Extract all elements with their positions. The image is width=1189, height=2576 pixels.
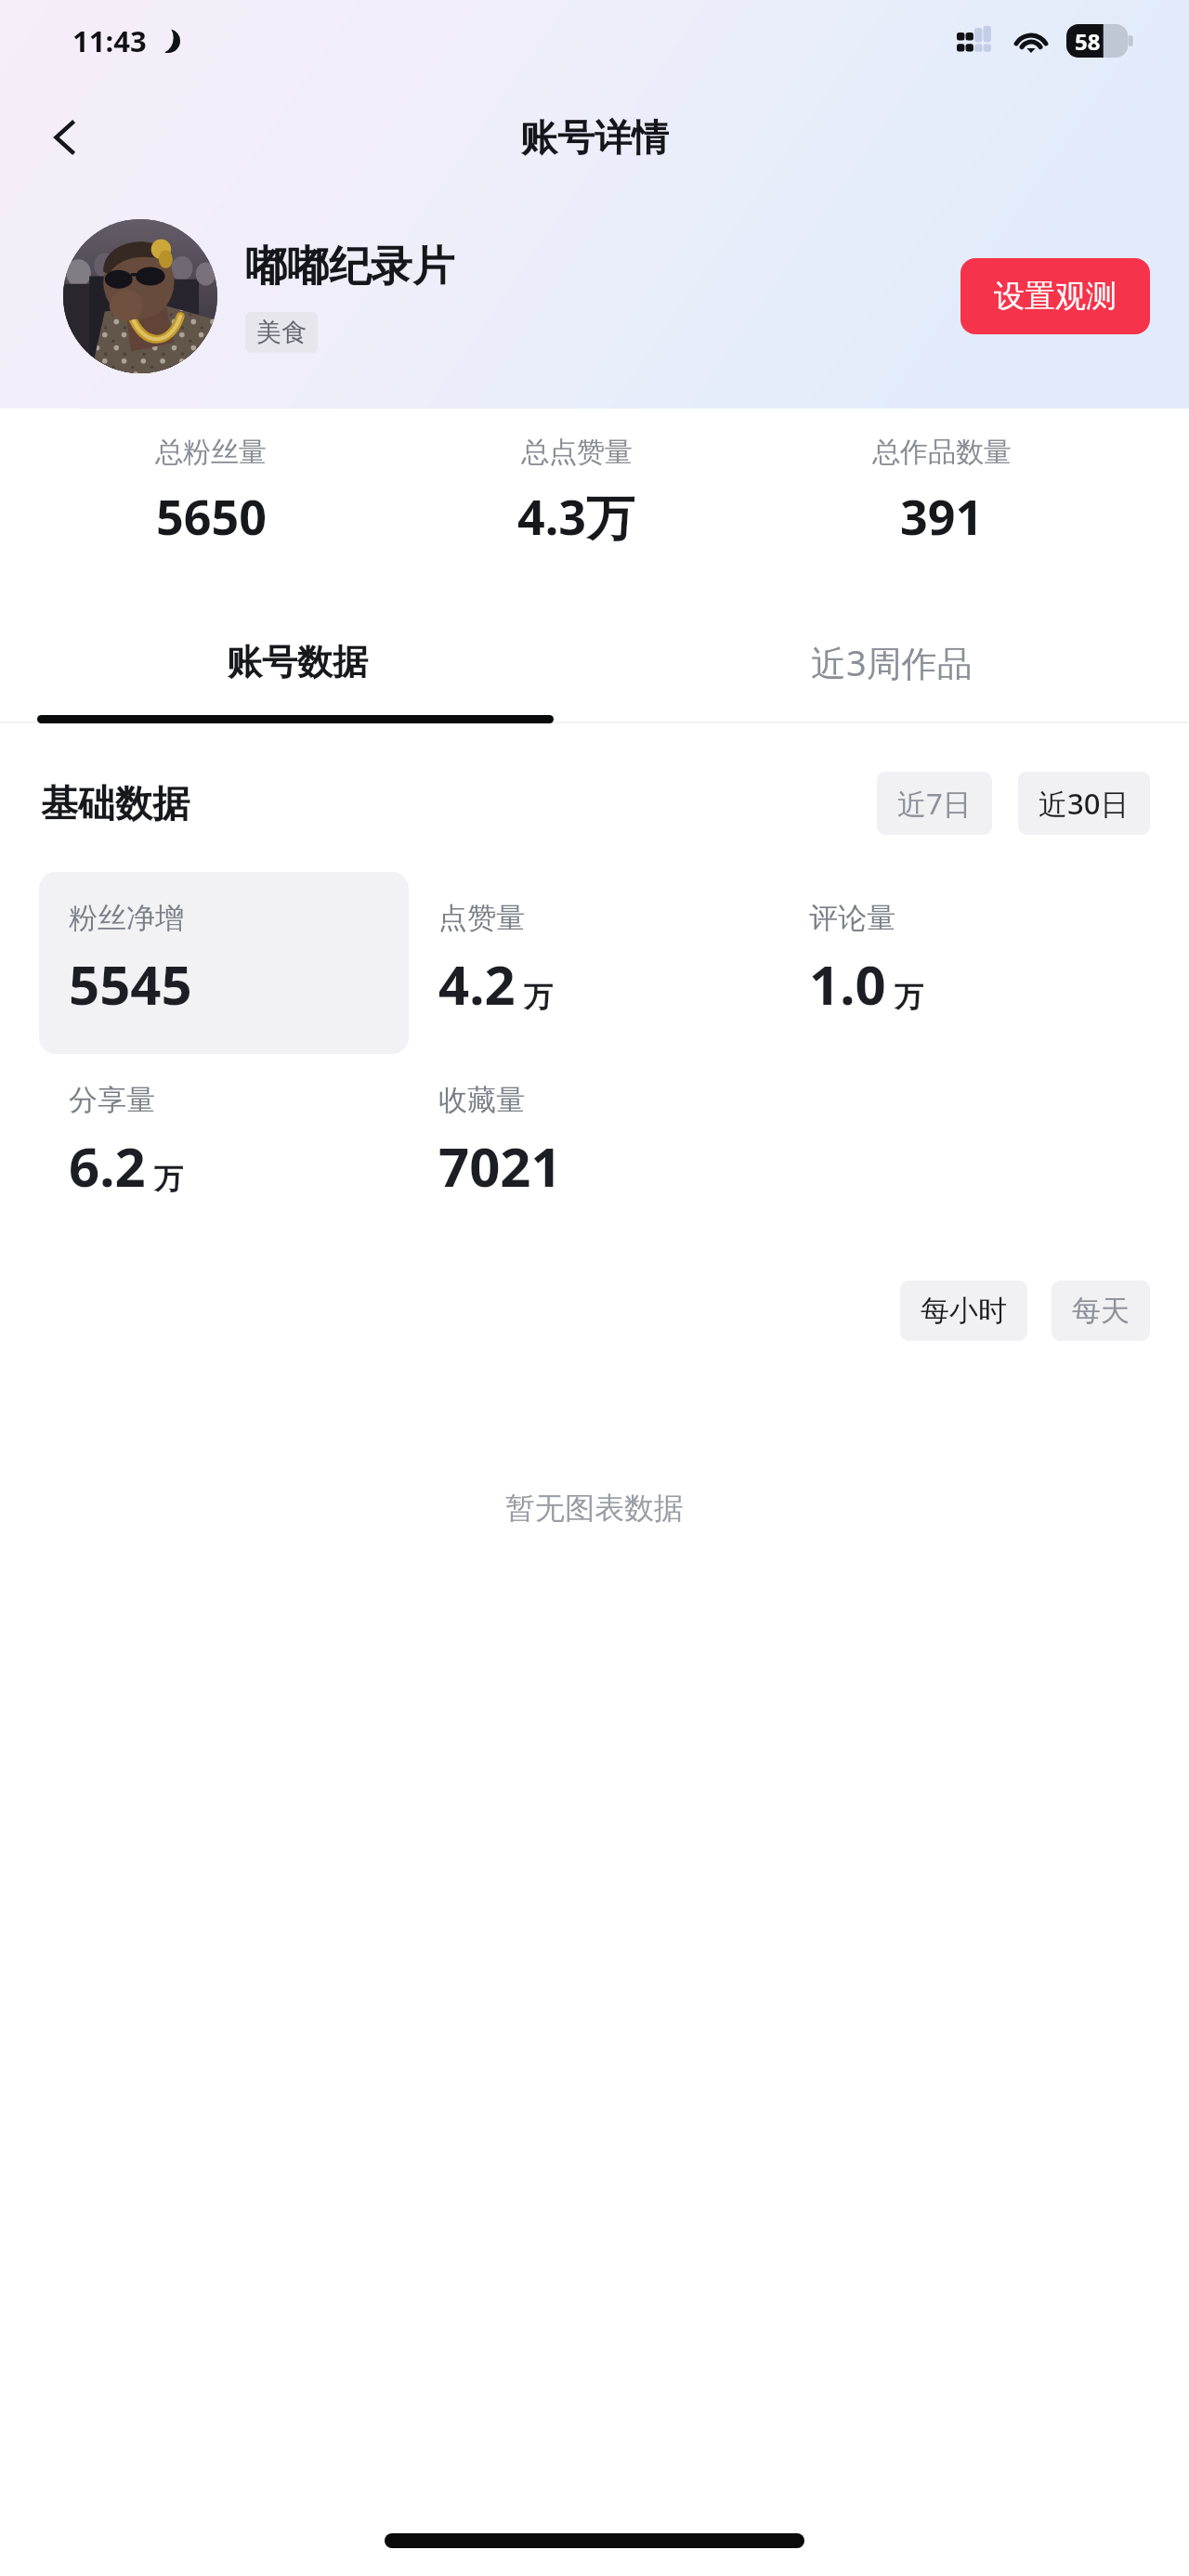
button[interactable]: 美食	[245, 312, 318, 353]
button[interactable]: 设置观测	[960, 258, 1150, 334]
staticText: 总作品数量	[872, 435, 1012, 470]
button[interactable]: 评论量	[779, 872, 1150, 1054]
staticText: 391	[900, 483, 984, 549]
staticText: 设置观测	[994, 277, 1117, 316]
staticText: 每小时	[921, 1293, 1007, 1329]
staticText: 每天	[1072, 1293, 1130, 1329]
button[interactable]: 每小时	[900, 1281, 1027, 1341]
button[interactable]: 粉丝净增	[39, 872, 409, 1054]
staticText: 嘟嘟纪录片	[245, 241, 454, 293]
staticText: 4.3万	[517, 483, 635, 549]
staticText: 基础数据	[41, 780, 189, 826]
staticText: 账号数据	[227, 640, 368, 684]
button[interactable]: 总点赞量	[394, 435, 759, 549]
button[interactable]: 点赞量	[409, 872, 779, 1054]
staticText: 4.2	[438, 947, 516, 1021]
staticText: 7021	[438, 1129, 562, 1203]
button[interactable]: 近7日	[877, 772, 992, 835]
staticText: 5650	[156, 483, 267, 549]
staticText: 万	[154, 1161, 183, 1197]
staticText: 评论量	[809, 900, 895, 936]
staticText: 近30日	[1039, 784, 1130, 823]
button[interactable]: 近30日	[1018, 772, 1150, 835]
button[interactable]: 总作品数量	[759, 435, 1124, 549]
button[interactable]: 账号数据	[0, 601, 594, 723]
staticText: 万	[524, 979, 553, 1015]
staticText: 近3周作品	[811, 638, 973, 686]
staticText: 账号详情	[520, 114, 669, 161]
staticText: 总粉丝量	[155, 435, 267, 470]
staticText: 1.0	[809, 947, 886, 1021]
button[interactable]: 总粉丝量	[28, 435, 394, 549]
staticText: 万	[895, 979, 923, 1015]
staticText: 点赞量	[438, 900, 525, 936]
staticText: 5545	[69, 947, 192, 1021]
staticText: 58	[1075, 26, 1101, 57]
button[interactable]: 分享量	[39, 1078, 409, 1203]
staticText: 11:43	[72, 21, 147, 60]
button[interactable]: 收藏量	[409, 1078, 779, 1203]
staticText: 总点赞量	[521, 435, 633, 470]
staticText: 6.2	[69, 1129, 146, 1203]
staticText: 美食	[256, 317, 307, 348]
button[interactable]: 近3周作品	[594, 601, 1189, 723]
staticText: 粉丝净增	[69, 900, 184, 936]
button[interactable]: 每天	[1052, 1281, 1150, 1341]
button[interactable]: Back	[28, 100, 102, 175]
staticText: 收藏量	[438, 1082, 525, 1118]
staticText: 暂无图表数据	[0, 1490, 1189, 1527]
staticText: 分享量	[69, 1082, 155, 1118]
staticText: 近7日	[897, 784, 972, 823]
